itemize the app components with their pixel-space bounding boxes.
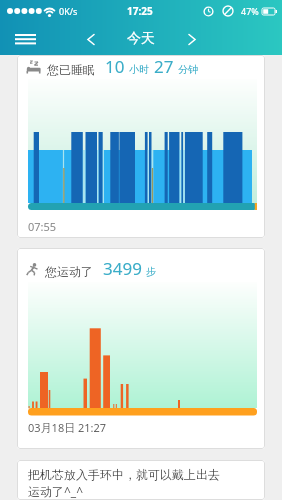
staticText: 把机芯放入手环中，就可以戴上出去 bbox=[28, 467, 220, 482]
staticText: 47% bbox=[241, 5, 259, 17]
staticText: 分钟 bbox=[178, 63, 198, 76]
staticText: 您已睡眠 bbox=[47, 62, 95, 77]
staticText: 03月18日 21:27 bbox=[28, 420, 107, 435]
staticText: 步 bbox=[146, 265, 156, 278]
button[interactable]: 把机芯放入手环中，就可以戴上出去 bbox=[17, 460, 265, 500]
button[interactable] bbox=[179, 26, 205, 52]
button[interactable]: 您运动了 bbox=[17, 248, 265, 449]
staticText: 今天 bbox=[127, 30, 155, 48]
button[interactable] bbox=[8, 26, 42, 52]
staticText: 07:55 bbox=[28, 219, 57, 234]
staticText: 您运动了 bbox=[45, 264, 93, 279]
staticText: 27 bbox=[154, 55, 174, 78]
staticText: 0K/s bbox=[59, 5, 78, 17]
staticText: 17:25 bbox=[127, 4, 153, 18]
staticText: 小时 bbox=[129, 63, 149, 76]
button[interactable]: 您已睡眠 bbox=[17, 55, 265, 238]
staticText: 10 bbox=[105, 55, 125, 78]
staticText: 运动了^_^ bbox=[28, 483, 84, 499]
staticText: 3499 bbox=[103, 257, 142, 280]
button[interactable] bbox=[77, 26, 103, 52]
